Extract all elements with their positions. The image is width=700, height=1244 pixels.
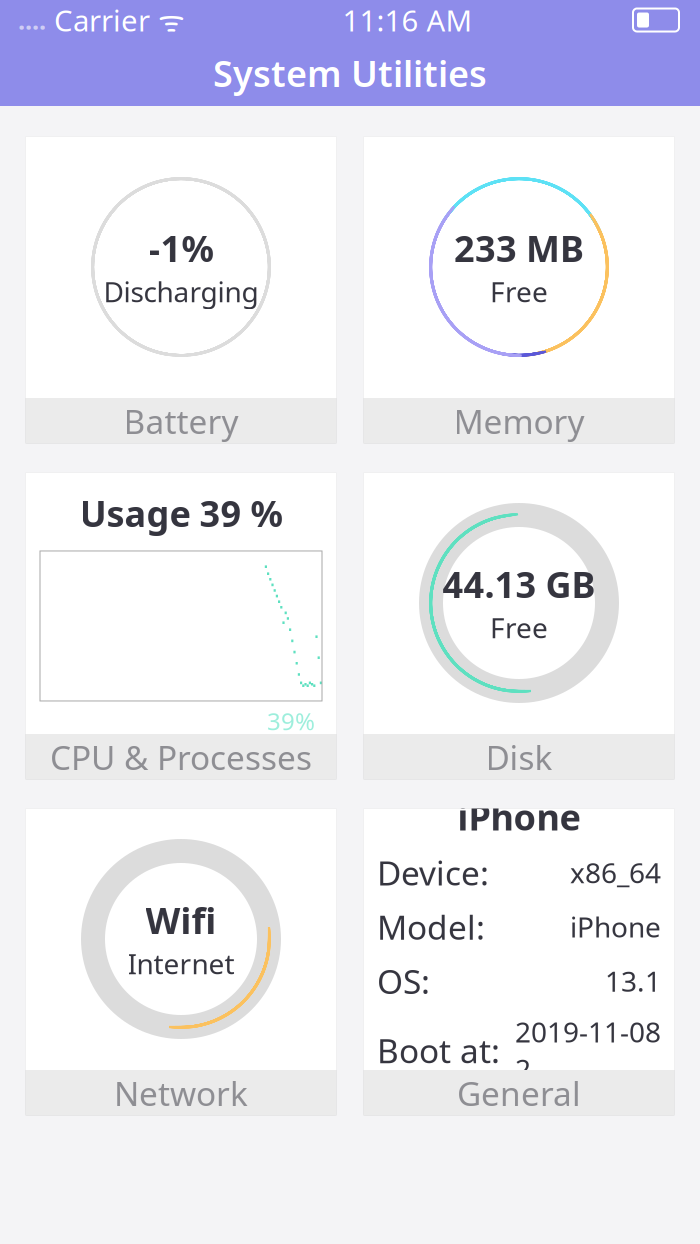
button[interactable]: iPhone bbox=[363, 808, 675, 1116]
staticText: 233 MB bbox=[454, 224, 584, 272]
staticText: .... bbox=[18, 3, 46, 37]
staticText: 11:16 AM bbox=[342, 0, 472, 39]
staticText: Network bbox=[114, 1071, 248, 1115]
staticText: x86_64 bbox=[570, 854, 661, 891]
staticText: Free bbox=[490, 609, 548, 646]
staticText: 2019-11-08 2… bbox=[515, 1013, 661, 1087]
staticText: Free bbox=[490, 273, 548, 310]
staticText: Boot at: bbox=[377, 1028, 500, 1072]
staticText: Device: bbox=[377, 850, 489, 895]
staticText: General bbox=[457, 1071, 581, 1115]
staticText: Discharging bbox=[103, 273, 258, 310]
staticText: 39% bbox=[267, 705, 315, 737]
staticText: Carrier bbox=[46, 0, 150, 39]
staticText: 13.1 bbox=[605, 962, 661, 1000]
staticText: -1% bbox=[148, 224, 213, 272]
staticText: iPhone bbox=[570, 908, 661, 945]
button[interactable]: 233 MB bbox=[363, 136, 675, 444]
staticText: OS: bbox=[377, 959, 430, 1003]
staticText: Internet bbox=[127, 945, 234, 982]
staticText: iPhone bbox=[457, 792, 580, 840]
button[interactable]: Wifi bbox=[25, 808, 337, 1116]
staticText: System Utilities bbox=[213, 49, 487, 97]
staticText: Battery bbox=[123, 399, 238, 443]
staticText: 44.13 GB bbox=[442, 560, 595, 608]
staticText: Model: bbox=[377, 905, 485, 949]
staticText: CPU & Processes bbox=[50, 735, 312, 779]
staticText: Disk bbox=[485, 735, 552, 779]
button[interactable]: Usage 39 % bbox=[25, 472, 337, 780]
button[interactable]: -1% bbox=[25, 136, 337, 444]
button[interactable]: 44.13 GB bbox=[363, 472, 675, 780]
staticText: Memory bbox=[453, 399, 584, 443]
staticText: Wifi bbox=[145, 896, 216, 944]
staticText: Usage 39 % bbox=[79, 489, 282, 537]
staticText: ᯤ bbox=[150, 0, 185, 39]
